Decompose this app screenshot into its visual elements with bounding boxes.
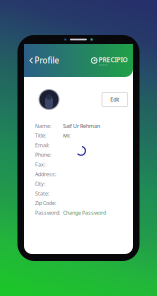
- staticText: Change Password: [63, 209, 106, 216]
- staticText: Fax:: [35, 161, 45, 168]
- staticText: Mr.: [63, 132, 70, 139]
- staticText: Password:: [35, 209, 60, 216]
- staticText: Edit: [110, 96, 119, 103]
- button[interactable]: Profile: [28, 52, 61, 69]
- staticText: Title:: [35, 132, 46, 139]
- staticText: Phone:: [35, 151, 51, 158]
- staticText: Saif Ur Rehman: [63, 122, 100, 129]
- staticText: Email:: [35, 142, 49, 149]
- staticText: City:: [35, 180, 45, 187]
- staticText: PRECIPIO: [98, 55, 127, 64]
- staticText: Address:: [35, 170, 56, 178]
- staticText: Profile: [34, 55, 59, 66]
- staticText: D I A G N O S T I C S: [98, 64, 107, 66]
- button[interactable]: Edit: [102, 92, 127, 106]
- staticText: Zip Code:: [35, 199, 56, 207]
- staticText: Name:: [35, 122, 51, 129]
- staticText: State:: [35, 190, 49, 197]
